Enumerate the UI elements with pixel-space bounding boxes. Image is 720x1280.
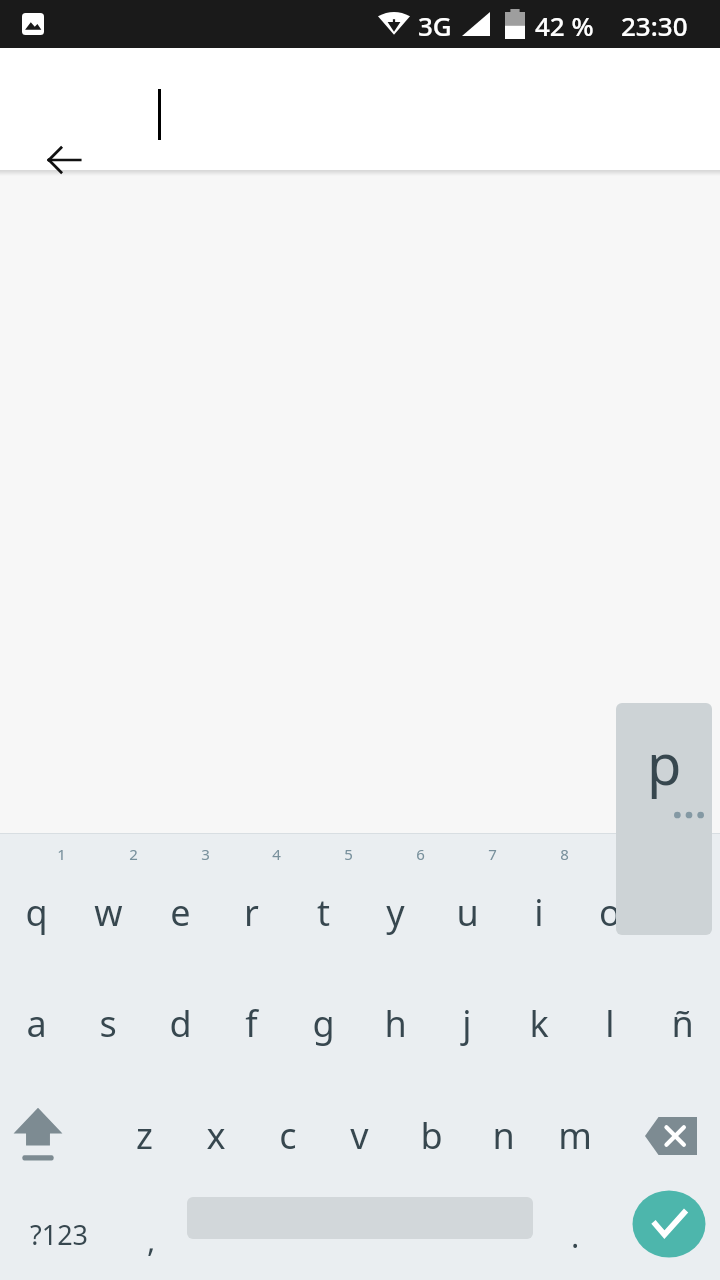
staticText: m bbox=[558, 1111, 592, 1160]
button[interactable]: i bbox=[503, 860, 575, 965]
staticText: a bbox=[26, 999, 47, 1048]
staticText: 3 bbox=[201, 844, 210, 864]
button[interactable]: Back bbox=[30, 126, 98, 194]
staticText: 2 bbox=[129, 844, 138, 864]
button[interactable]: z bbox=[108, 1083, 180, 1188]
button[interactable]: d bbox=[144, 971, 216, 1076]
button[interactable]: k bbox=[503, 971, 575, 1076]
staticText: g bbox=[312, 999, 335, 1048]
button[interactable]: p bbox=[646, 860, 718, 965]
staticText: h bbox=[384, 999, 407, 1048]
staticText: n bbox=[492, 1111, 515, 1160]
button[interactable]: , bbox=[118, 1188, 184, 1280]
staticText: i bbox=[534, 888, 544, 937]
button[interactable]: b bbox=[395, 1083, 467, 1188]
staticText: w bbox=[94, 888, 123, 937]
staticText: d bbox=[169, 999, 192, 1048]
button[interactable]: f bbox=[215, 971, 287, 1076]
button[interactable]: ?123 bbox=[0, 1188, 118, 1280]
staticText: c bbox=[279, 1111, 297, 1160]
staticText: v bbox=[350, 1111, 369, 1160]
button[interactable]: e bbox=[144, 860, 216, 965]
button[interactable]: j bbox=[431, 971, 503, 1076]
button[interactable]: l bbox=[574, 971, 646, 1076]
button[interactable]: g bbox=[287, 971, 359, 1076]
staticText: e bbox=[170, 888, 191, 937]
button[interactable]: h bbox=[359, 971, 431, 1076]
staticText: l bbox=[605, 999, 615, 1048]
staticText: ?123 bbox=[30, 1216, 89, 1253]
staticText: ñ bbox=[671, 999, 694, 1048]
button[interactable]: y bbox=[359, 860, 431, 965]
staticText: 23:30 bbox=[621, 8, 688, 43]
staticText: , bbox=[147, 1219, 156, 1261]
button[interactable]: t bbox=[287, 860, 359, 965]
button[interactable]: ñ bbox=[646, 971, 718, 1076]
staticText: 3G bbox=[418, 8, 452, 43]
staticText: 8 bbox=[560, 844, 569, 864]
button[interactable]: Shift bbox=[2, 1083, 74, 1188]
staticText: 7 bbox=[488, 844, 497, 864]
staticText: f bbox=[245, 999, 258, 1048]
button[interactable]: c bbox=[252, 1083, 324, 1188]
staticText: x bbox=[206, 1111, 226, 1160]
button[interactable]: n bbox=[467, 1083, 539, 1188]
staticText: s bbox=[99, 999, 117, 1048]
staticText: q bbox=[25, 888, 48, 937]
button[interactable]: v bbox=[323, 1083, 395, 1188]
staticText: 4 bbox=[272, 844, 281, 864]
button[interactable]: Backspace bbox=[632, 1083, 710, 1188]
button[interactable]: u bbox=[431, 860, 503, 965]
staticText: z bbox=[136, 1111, 153, 1160]
staticText: t bbox=[317, 888, 330, 937]
button[interactable]: r bbox=[215, 860, 287, 965]
staticText: r bbox=[244, 888, 259, 937]
button[interactable]: x bbox=[180, 1083, 252, 1188]
staticText: 6 bbox=[416, 844, 425, 864]
button[interactable]: o bbox=[574, 860, 646, 965]
staticText: k bbox=[529, 999, 549, 1048]
staticText: . bbox=[571, 1215, 580, 1257]
button[interactable]: s bbox=[72, 971, 144, 1076]
button[interactable]: a bbox=[0, 971, 72, 1076]
button[interactable]: q bbox=[0, 860, 72, 965]
button[interactable]: m bbox=[539, 1083, 611, 1188]
staticText: p bbox=[647, 725, 682, 801]
staticText: o bbox=[599, 888, 621, 937]
button[interactable]: . bbox=[540, 1188, 610, 1280]
staticText: 42 % bbox=[535, 8, 594, 43]
staticText: u bbox=[456, 888, 479, 937]
staticText: 1 bbox=[57, 844, 66, 864]
button[interactable]: w bbox=[72, 860, 144, 965]
staticText: 5 bbox=[344, 844, 353, 864]
button[interactable]: Done bbox=[629, 1185, 709, 1263]
button[interactable]: Text field bbox=[130, 68, 690, 152]
staticText: y bbox=[386, 888, 405, 937]
staticText: j bbox=[462, 999, 472, 1048]
staticText: p bbox=[671, 888, 694, 937]
staticText: b bbox=[420, 1111, 443, 1160]
